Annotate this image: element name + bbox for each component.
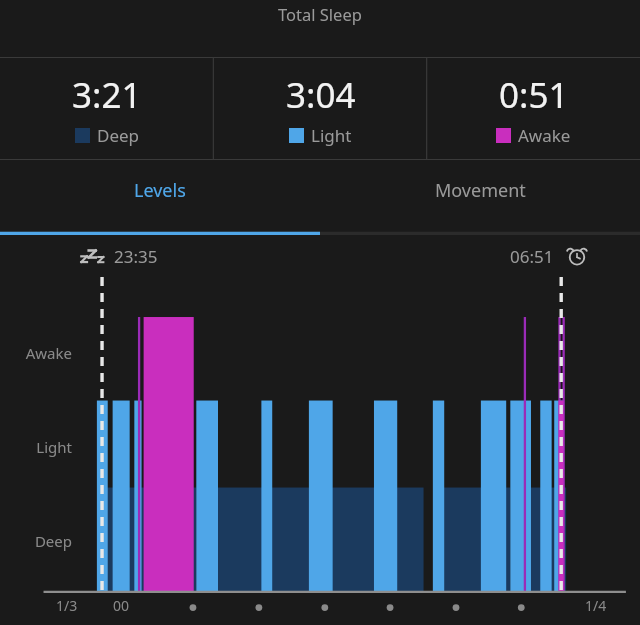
staticText: 23:35 [114, 245, 158, 268]
staticText: Awake [10, 343, 72, 363]
staticText: Deep [97, 124, 140, 147]
staticText: 3:21 [72, 71, 142, 119]
button[interactable]: 3:21 [0, 57, 214, 160]
staticText: 3:04 [286, 71, 356, 119]
staticText: Levels [134, 178, 186, 203]
button[interactable]: 0:51 [427, 57, 640, 160]
other: Alarm [566, 245, 588, 267]
staticText: 1/3 [56, 596, 78, 615]
staticText: Movement [435, 178, 526, 203]
button[interactable]: Levels [0, 160, 320, 235]
staticText: 00 [113, 596, 130, 615]
staticText: Light [10, 437, 72, 457]
button[interactable]: Movement [320, 160, 640, 235]
staticText: Deep [10, 531, 72, 551]
staticText: 1/4 [585, 596, 607, 615]
staticText: 06:51 [510, 245, 554, 268]
staticText: 0:51 [499, 71, 569, 119]
staticText: Total Sleep [278, 3, 362, 25]
staticText: Awake [518, 124, 571, 147]
button[interactable]: 3:04 [214, 57, 427, 160]
staticText: Light [311, 124, 352, 147]
